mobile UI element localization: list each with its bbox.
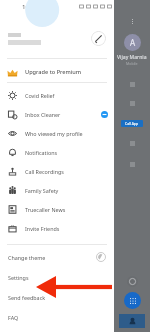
button[interactable]: Family Safety xyxy=(0,181,114,200)
staticText: Send feedback xyxy=(8,294,46,301)
staticText: Covid Relief xyxy=(25,92,108,99)
staticText: Family Safety xyxy=(25,187,108,194)
staticText: Who viewed my profile xyxy=(25,130,108,137)
staticText: FAQ xyxy=(8,314,19,321)
button[interactable]: Notifications xyxy=(0,143,114,162)
staticText: Upgrade to Premium xyxy=(25,68,82,76)
button[interactable]: FAQ xyxy=(0,307,114,327)
button[interactable]: Upgrade to Premium xyxy=(0,62,114,82)
staticText: Settings xyxy=(8,274,29,281)
staticText: 10:47 xyxy=(22,3,38,11)
button[interactable]: Invite Friends xyxy=(0,219,114,238)
staticText: A xyxy=(130,37,136,48)
button[interactable]: Inbox Cleaner xyxy=(0,105,114,124)
button[interactable]: Edit profile xyxy=(91,31,106,46)
staticText: Notifications xyxy=(25,149,108,156)
staticText: Invite Friends xyxy=(25,225,108,232)
button[interactable]: Who viewed my profile xyxy=(0,124,114,143)
staticText: Truecaller News xyxy=(25,206,108,213)
button[interactable]: Covid Relief xyxy=(0,86,114,105)
button[interactable]: Send feedback xyxy=(0,287,114,307)
staticText: Call Recordings xyxy=(25,168,108,175)
staticText: Call App xyxy=(125,121,139,126)
button[interactable]: Change theme xyxy=(0,247,114,267)
staticText: Vijay Marnia xyxy=(117,54,147,61)
button[interactable]: Settings xyxy=(0,267,114,287)
button[interactable]: Truecaller News xyxy=(0,200,114,219)
staticText: Inbox Cleaner xyxy=(25,111,101,118)
staticText: Mobile xyxy=(126,61,138,66)
button[interactable]: Call Recordings xyxy=(0,162,114,181)
staticText: Change theme xyxy=(8,254,96,261)
